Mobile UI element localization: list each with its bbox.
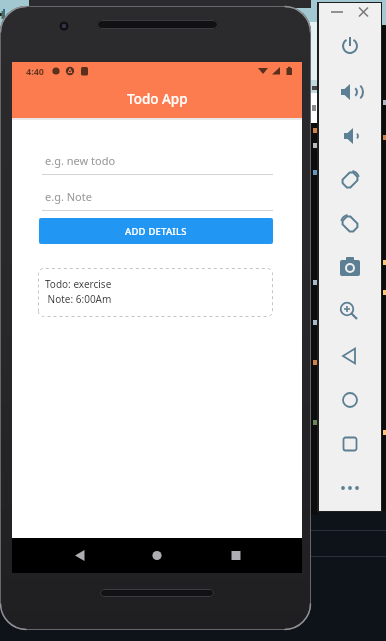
button[interactable] bbox=[319, 465, 381, 509]
button[interactable] bbox=[319, 245, 381, 289]
button[interactable] bbox=[319, 69, 381, 113]
button[interactable] bbox=[319, 157, 381, 201]
staticText: Todo: exercise bbox=[45, 277, 112, 291]
button[interactable] bbox=[319, 333, 381, 377]
button[interactable] bbox=[205, 538, 302, 573]
staticText: Todo App bbox=[127, 90, 188, 108]
button[interactable] bbox=[319, 25, 381, 69]
button[interactable] bbox=[12, 538, 108, 573]
button[interactable] bbox=[319, 289, 381, 333]
button[interactable]: e.g. Note bbox=[42, 189, 273, 210]
button[interactable]: e.g. new todo bbox=[42, 153, 273, 174]
staticText: Note: 6:00Am bbox=[45, 292, 112, 306]
button[interactable] bbox=[319, 377, 381, 421]
button[interactable] bbox=[108, 538, 205, 573]
staticText: e.g. new todo bbox=[45, 153, 116, 168]
staticText: 4:40 bbox=[26, 65, 44, 77]
button[interactable]: Todo: exercise bbox=[38, 268, 273, 317]
button[interactable]: ADD DETAILS bbox=[39, 218, 273, 244]
staticText: ADD DETAILS bbox=[125, 225, 187, 238]
button[interactable] bbox=[319, 113, 381, 157]
button[interactable] bbox=[319, 201, 381, 245]
button[interactable] bbox=[319, 421, 381, 465]
staticText: e.g. Note bbox=[45, 189, 92, 204]
